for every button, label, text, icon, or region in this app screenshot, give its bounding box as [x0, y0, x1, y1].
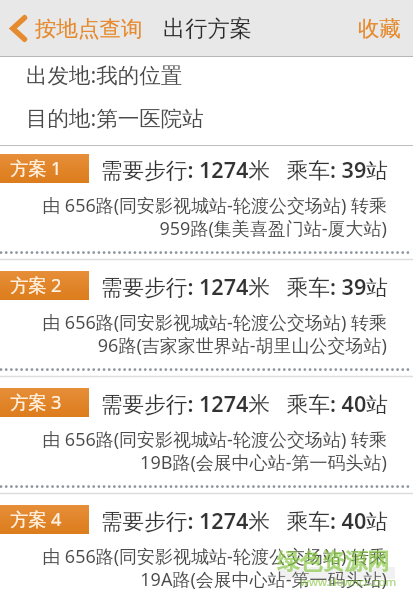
- button[interactable]: 按地点查询: [9, 15, 143, 42]
- staticText: 需要步行: 1274米 乘车: 40站: [101, 389, 388, 419]
- staticText: 按地点查询: [35, 15, 143, 42]
- staticText: 方案 4: [10, 507, 62, 532]
- staticText: 由 656路(同安影视城站-轮渡公交场站) 转乘 959路(集美喜盈门站-厦大站…: [0, 193, 387, 241]
- staticText: 需要步行: 1274米 乘车: 39站: [101, 272, 388, 302]
- staticText: 需要步行: 1274米 乘车: 40站: [101, 506, 388, 536]
- staticText: www.downcc.com: [300, 574, 397, 590]
- button[interactable]: 方案 4: [0, 497, 413, 600]
- staticText: 方案 2: [10, 273, 62, 298]
- staticText: 由 656路(同安影视城站-轮渡公交场站) 转乘 96路(吉家家世界站-胡里山公…: [0, 310, 387, 358]
- staticText: 需要步行: 1274米 乘车: 39站: [101, 155, 388, 185]
- staticText: 目的地:第一医院站: [26, 103, 204, 132]
- staticText: 绿色资源网: [277, 547, 390, 575]
- staticText: 由 656路(同安影视城站-轮渡公交场站) 转乘 19B路(会展中心站-第一码头…: [0, 427, 387, 475]
- staticText: 方案 1: [10, 156, 62, 181]
- staticText: 出发地:我的位置: [26, 60, 183, 89]
- button[interactable]: 方案 3: [0, 380, 413, 485]
- staticText: 出行方案: [163, 15, 252, 43]
- staticText: 收藏: [358, 15, 401, 42]
- staticText: 由 656路(同安影视城站-轮渡公交场站) 转乘 19A路(会展中心站-第一码头…: [0, 544, 387, 592]
- staticText: 方案 3: [10, 390, 62, 415]
- button[interactable]: 方案 1: [0, 146, 413, 251]
- button[interactable]: 收藏: [358, 15, 401, 42]
- button[interactable]: 方案 2: [0, 263, 413, 368]
